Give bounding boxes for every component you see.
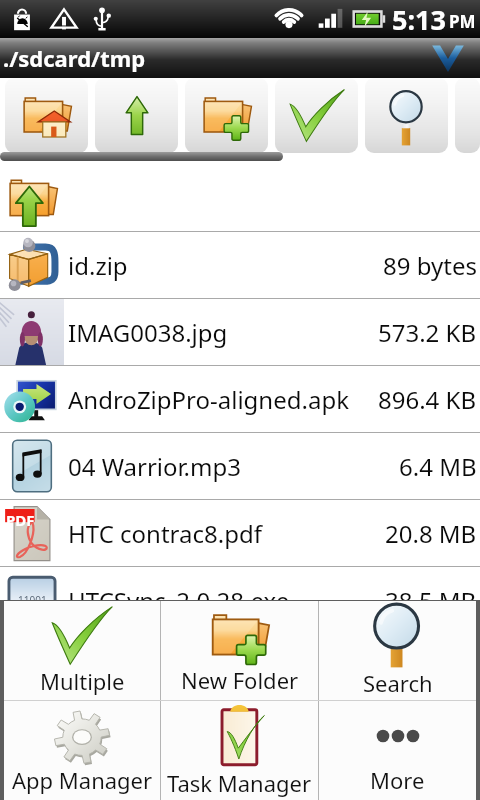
button[interactable]: Home folder (5, 78, 88, 153)
staticText: Task Manager (167, 768, 312, 798)
button[interactable]: Task Manager (161, 701, 318, 800)
staticText: HTC contrac8.pdf (68, 517, 385, 550)
staticText: HTCSync_2.0.28.exe (68, 584, 385, 617)
staticText: IMAG0038.jpg (68, 316, 378, 349)
button[interactable]: Select multiple (275, 78, 358, 153)
button[interactable]: 04 Warrior.mp3 (0, 433, 480, 499)
staticText: AndroZipPro-aligned.apk (68, 383, 378, 416)
staticText: ./sdcard/tmp (3, 43, 146, 73)
staticText: Multiple (40, 666, 125, 696)
button[interactable]: Up (95, 78, 178, 153)
staticText: 04 Warrior.mp3 (68, 450, 399, 483)
staticText: 896.4 KB (378, 383, 477, 416)
button[interactable]: More (319, 701, 476, 800)
button[interactable]: Dropdown (430, 43, 466, 73)
staticText: App Manager (12, 765, 153, 795)
button[interactable]: id.zip (0, 232, 480, 298)
button[interactable]: AndroZipPro-aligned.apk (0, 366, 480, 432)
button[interactable]: PDF (0, 500, 480, 566)
button[interactable]: Parent directory (0, 163, 480, 231)
staticText: PDF (6, 510, 35, 530)
staticText: 20.8 MB (385, 517, 477, 550)
staticText: 5:13 (392, 1, 446, 38)
button[interactable]: New Folder (161, 601, 318, 700)
staticText: 6.4 MB (399, 450, 477, 483)
staticText: 89 bytes (383, 249, 477, 282)
staticText: id.zip (68, 249, 383, 282)
button[interactable]: Search (319, 601, 476, 700)
button[interactable]: More (455, 78, 480, 153)
button[interactable]: Search (365, 78, 448, 153)
staticText: 11001 (18, 593, 47, 607)
button[interactable]: IMAG0038.jpg (0, 299, 480, 365)
button[interactable]: 11001 (0, 567, 480, 633)
staticText: 38.5 MB (385, 584, 477, 617)
button[interactable]: App Manager (4, 701, 160, 800)
staticText: Search (363, 668, 433, 698)
staticText: New Folder (181, 665, 299, 695)
staticText: PM (449, 10, 476, 33)
staticText: More (370, 765, 425, 795)
staticText: 573.2 KB (378, 316, 477, 349)
button[interactable]: New folder (185, 78, 268, 153)
button[interactable]: Multiple (4, 601, 160, 700)
